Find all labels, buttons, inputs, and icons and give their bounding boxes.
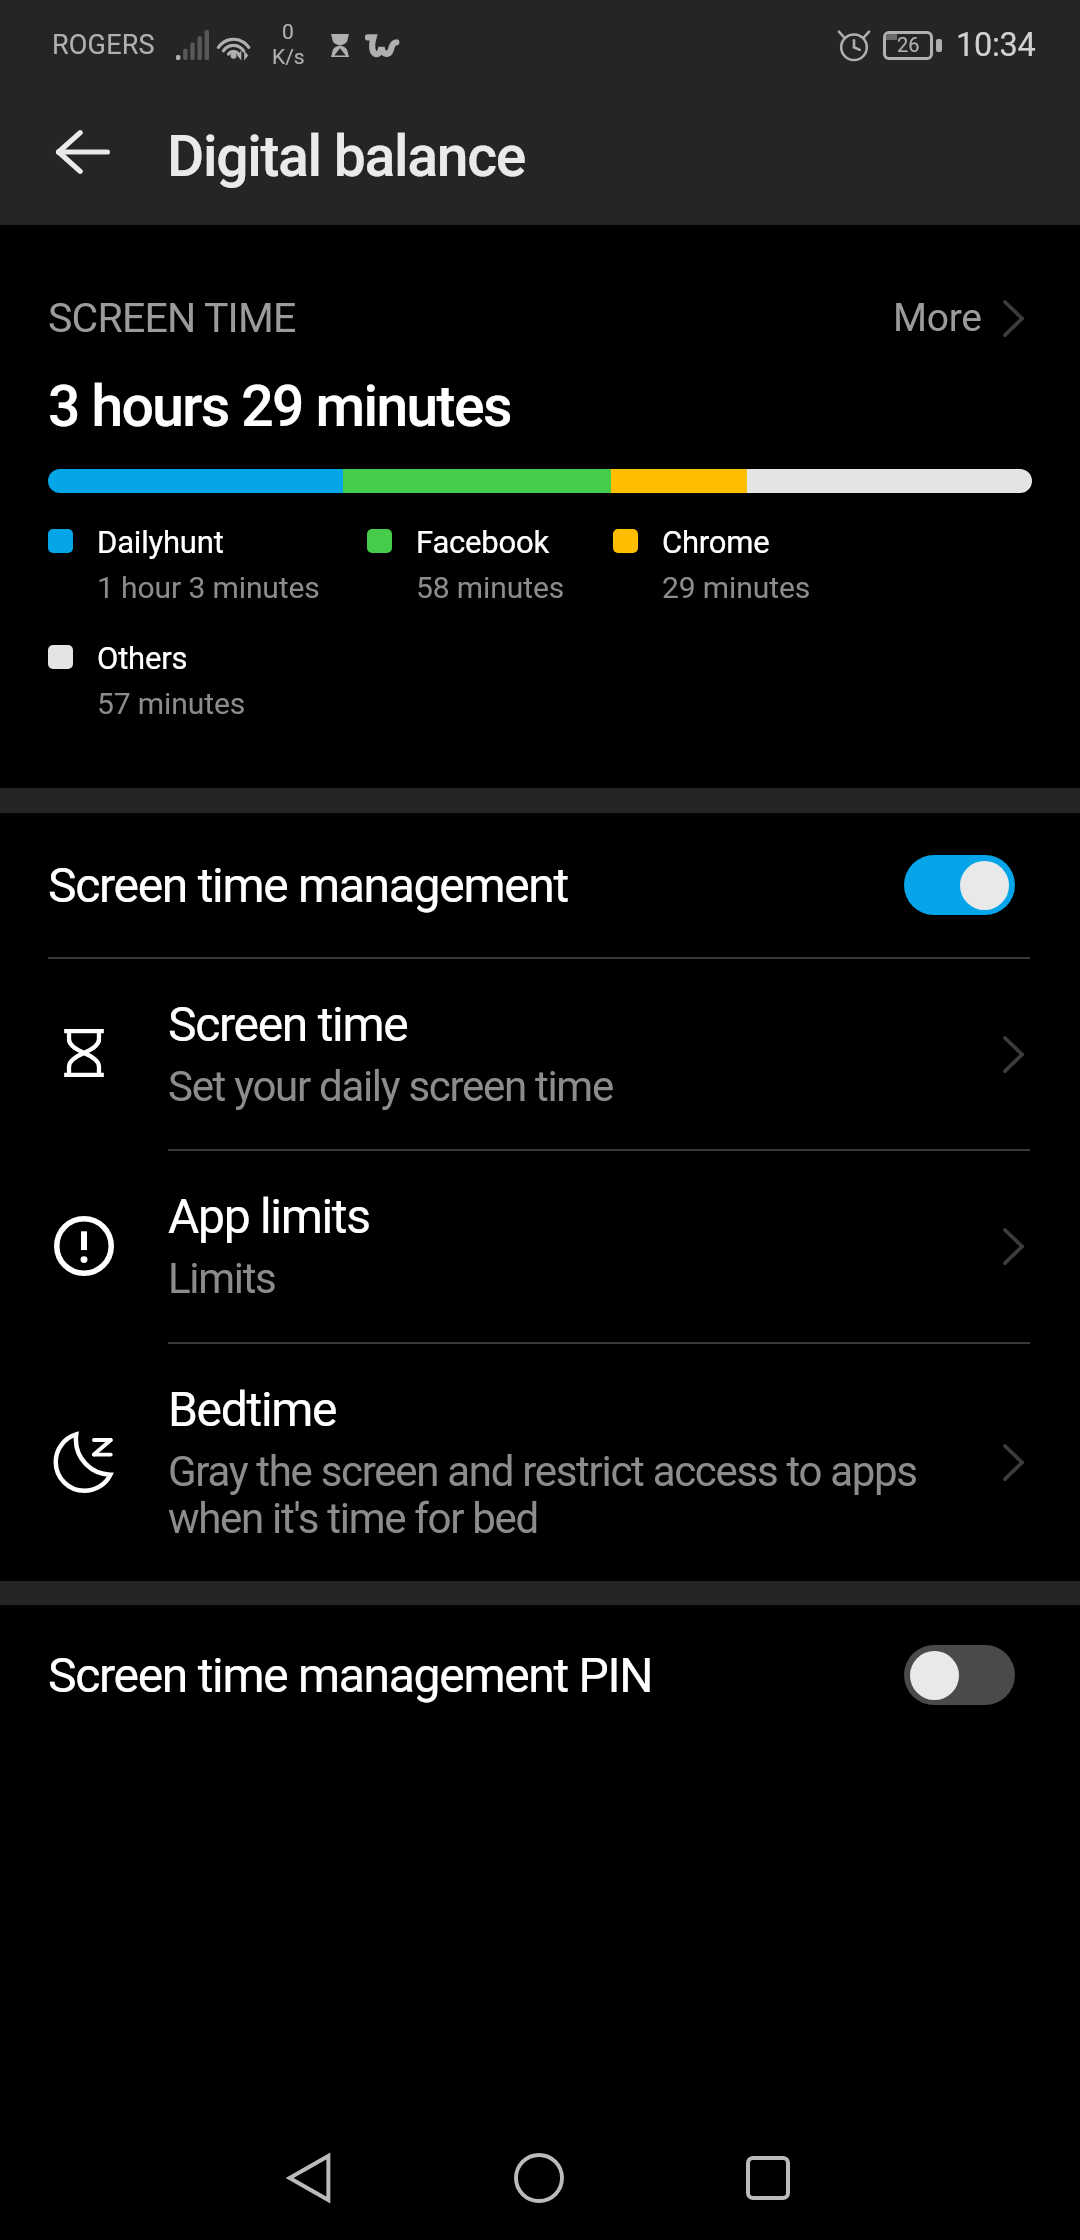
- button[interactable]: Screen time: [0, 959, 1080, 1149]
- button[interactable]: Screen time management, on: [904, 855, 1015, 915]
- staticText: Facebook: [416, 524, 550, 560]
- button[interactable]: Recent apps: [713, 2123, 823, 2233]
- staticText: Dailyhunt: [97, 524, 224, 560]
- button[interactable]: Back: [254, 2123, 364, 2233]
- button[interactable]: Home: [484, 2123, 594, 2233]
- staticText: 3 hours 29 minutes: [48, 373, 511, 440]
- staticText: 0: [282, 20, 294, 45]
- staticText: 1 hour 3 minutes: [97, 570, 320, 605]
- button[interactable]: Screen time management PIN: [0, 1605, 1080, 1745]
- staticText: SCREEN TIME: [48, 294, 296, 342]
- button[interactable]: App limits: [0, 1151, 1080, 1342]
- staticText: 10:34: [956, 26, 1036, 64]
- staticText: Others: [97, 640, 188, 676]
- button[interactable]: Screen time management PIN, off: [904, 1645, 1015, 1705]
- button[interactable]: Screen time management: [0, 813, 1080, 957]
- staticText: Digital balance: [167, 123, 525, 190]
- staticText: Chrome: [662, 524, 770, 560]
- staticText: 57 minutes: [97, 686, 246, 721]
- staticText: App limits: [168, 1188, 370, 1244]
- staticText: ROGERS: [52, 29, 155, 61]
- staticText: 58 minutes: [416, 570, 565, 605]
- staticText: K/s: [272, 45, 305, 70]
- staticText: Bedtime: [168, 1381, 337, 1437]
- staticText: Screen time management PIN: [48, 1647, 653, 1703]
- staticText: 26: [897, 34, 920, 56]
- staticText: Screen time: [168, 996, 408, 1052]
- staticText: Limits: [168, 1254, 276, 1303]
- staticText: Set your daily screen time: [168, 1062, 613, 1111]
- staticText: Screen time management: [48, 857, 568, 913]
- staticText: More: [893, 295, 982, 341]
- button[interactable]: Back: [36, 110, 130, 194]
- staticText: 29 minutes: [662, 570, 811, 605]
- button[interactable]: Bedtime: [0, 1344, 1080, 1581]
- staticText: Gray the screen and restrict access to a…: [168, 1447, 983, 1543]
- button[interactable]: SCREEN TIME: [0, 279, 1080, 357]
